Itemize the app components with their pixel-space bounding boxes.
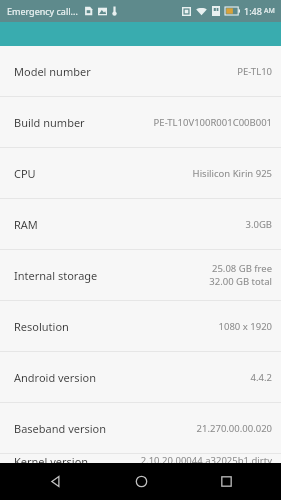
- button[interactable]: Home: [111, 463, 171, 500]
- button[interactable]: Model number: [0, 46, 281, 96]
- staticText: Resolution: [14, 319, 69, 334]
- staticText: Kernel version: [14, 454, 89, 463]
- staticText: 1080 x 1920: [218, 320, 272, 333]
- staticText: 21.270.00.00.020: [196, 422, 272, 435]
- button[interactable]: Baseband version: [0, 403, 281, 453]
- staticText: 32.00 GB total: [209, 275, 272, 288]
- staticText: Android version: [14, 370, 96, 385]
- button[interactable]: Build number: [0, 97, 281, 147]
- button[interactable]: Recents: [196, 463, 256, 500]
- staticText: Model number: [14, 64, 91, 79]
- staticText: Build number: [14, 115, 85, 130]
- button[interactable]: Resolution: [0, 301, 281, 351]
- button[interactable]: RAM: [0, 199, 281, 249]
- staticText: CPU: [14, 166, 36, 181]
- staticText: 25.08 GB free: [211, 262, 272, 275]
- button[interactable]: Back: [25, 463, 85, 500]
- staticText: Hisilicon Kirin 925: [192, 167, 272, 180]
- button[interactable]: CPU: [0, 148, 281, 198]
- staticText: AM: [264, 6, 275, 16]
- staticText: PE-TL10V100R001C00B001: [153, 116, 272, 129]
- staticText: RAM: [14, 217, 38, 232]
- staticText: PE-TL10: [237, 65, 272, 78]
- staticText: 2.10.20.00044.a32025b1.dirty: [140, 454, 272, 463]
- staticText: Baseband version: [14, 421, 107, 436]
- button[interactable]: Kernel version: [0, 454, 281, 463]
- staticText: 4.4.2: [250, 371, 272, 384]
- staticText: Internal storage: [14, 268, 98, 283]
- button[interactable]: Android version: [0, 352, 281, 402]
- staticText: 1:48: [244, 5, 262, 17]
- button[interactable]: Internal storage: [0, 250, 281, 300]
- staticText: Emergency call...: [7, 5, 78, 17]
- staticText: 3.0GB: [245, 218, 272, 231]
